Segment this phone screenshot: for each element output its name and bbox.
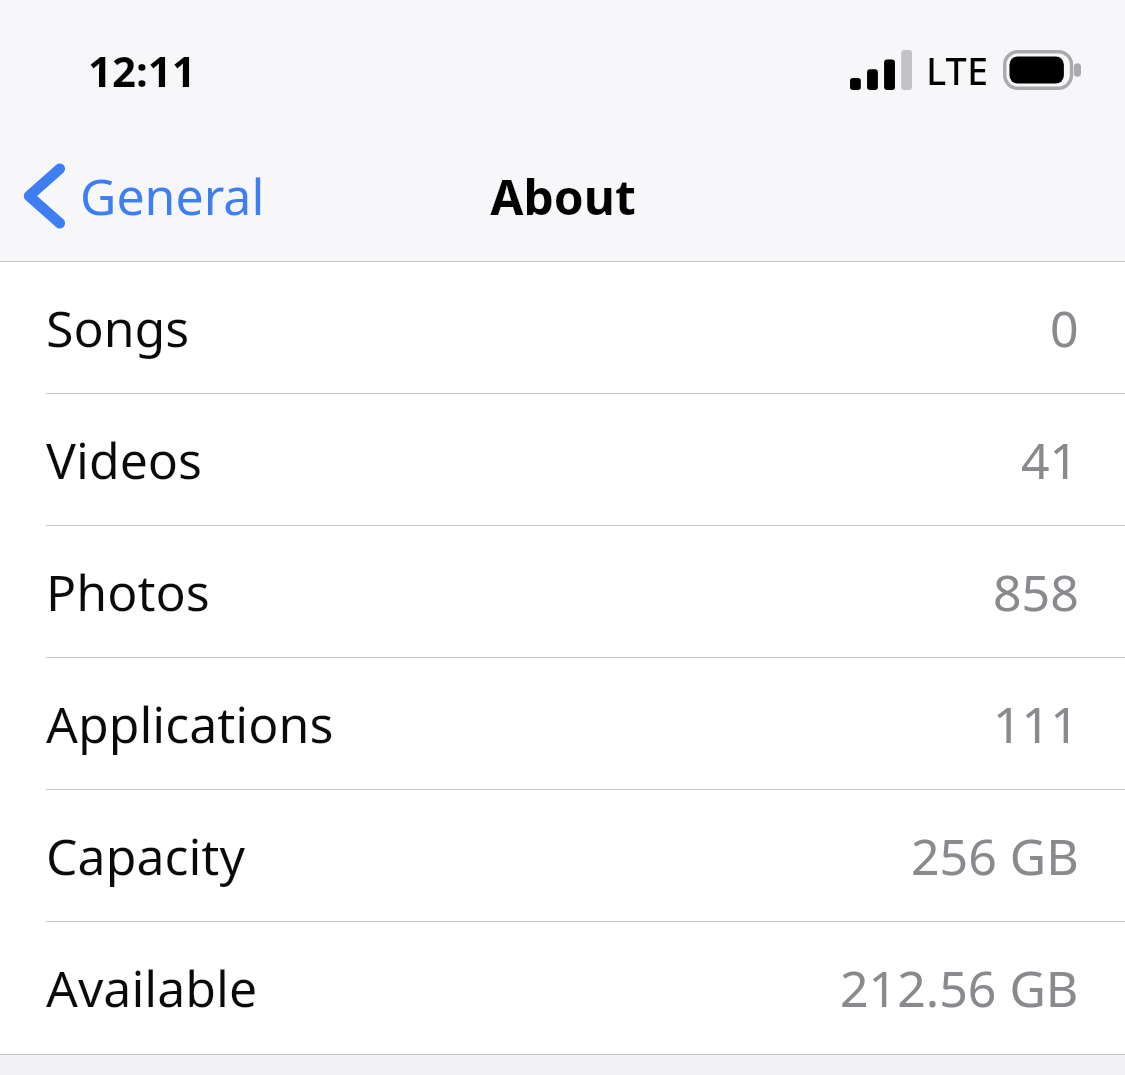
staticText: Available xyxy=(46,954,258,1022)
button[interactable]: Applications xyxy=(0,658,1125,790)
staticText: Songs xyxy=(46,294,190,362)
button[interactable]: General xyxy=(0,130,285,262)
button[interactable]: Photos xyxy=(0,526,1125,658)
staticText: 212.56 GB xyxy=(840,954,1079,1022)
button[interactable]: Available xyxy=(0,922,1125,1054)
staticText: LTE xyxy=(926,44,989,96)
staticText: Applications xyxy=(46,690,334,758)
staticText: Videos xyxy=(46,426,203,494)
staticText: General xyxy=(80,162,265,230)
button[interactable]: Videos xyxy=(0,394,1125,526)
staticText: 12:11 xyxy=(88,42,196,99)
staticText: About xyxy=(490,164,636,229)
staticText: 0 xyxy=(1050,294,1079,362)
staticText: 858 xyxy=(993,558,1079,626)
staticText: Photos xyxy=(46,558,210,626)
staticText: 41 xyxy=(1021,426,1079,494)
button[interactable]: Songs xyxy=(0,262,1125,394)
staticText: 256 GB xyxy=(911,822,1079,890)
button[interactable]: Capacity xyxy=(0,790,1125,922)
staticText: 111 xyxy=(993,690,1079,758)
staticText: Capacity xyxy=(46,822,245,890)
